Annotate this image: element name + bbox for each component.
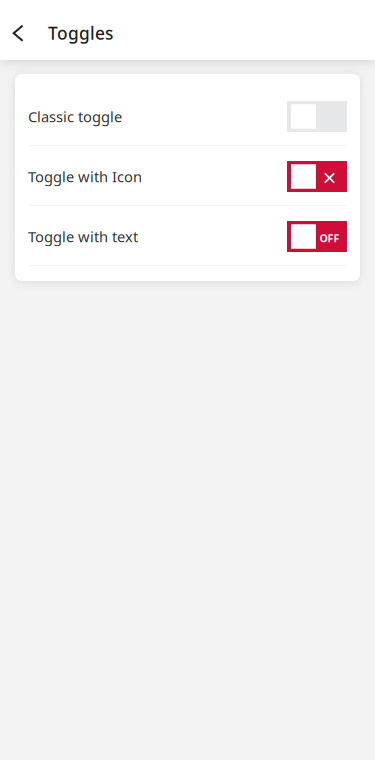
staticText: Toggle with text bbox=[28, 227, 138, 246]
button[interactable]: Toggle with text bbox=[15, 206, 360, 266]
staticText: Classic toggle bbox=[28, 107, 122, 126]
staticText: Toggles bbox=[48, 21, 113, 44]
button[interactable]: Classic toggle bbox=[15, 86, 360, 146]
button[interactable]: Back bbox=[0, 11, 36, 55]
button[interactable]: Toggle with Icon bbox=[15, 146, 360, 206]
staticText: OFF bbox=[319, 231, 339, 245]
staticText: Toggle with Icon bbox=[28, 167, 142, 186]
